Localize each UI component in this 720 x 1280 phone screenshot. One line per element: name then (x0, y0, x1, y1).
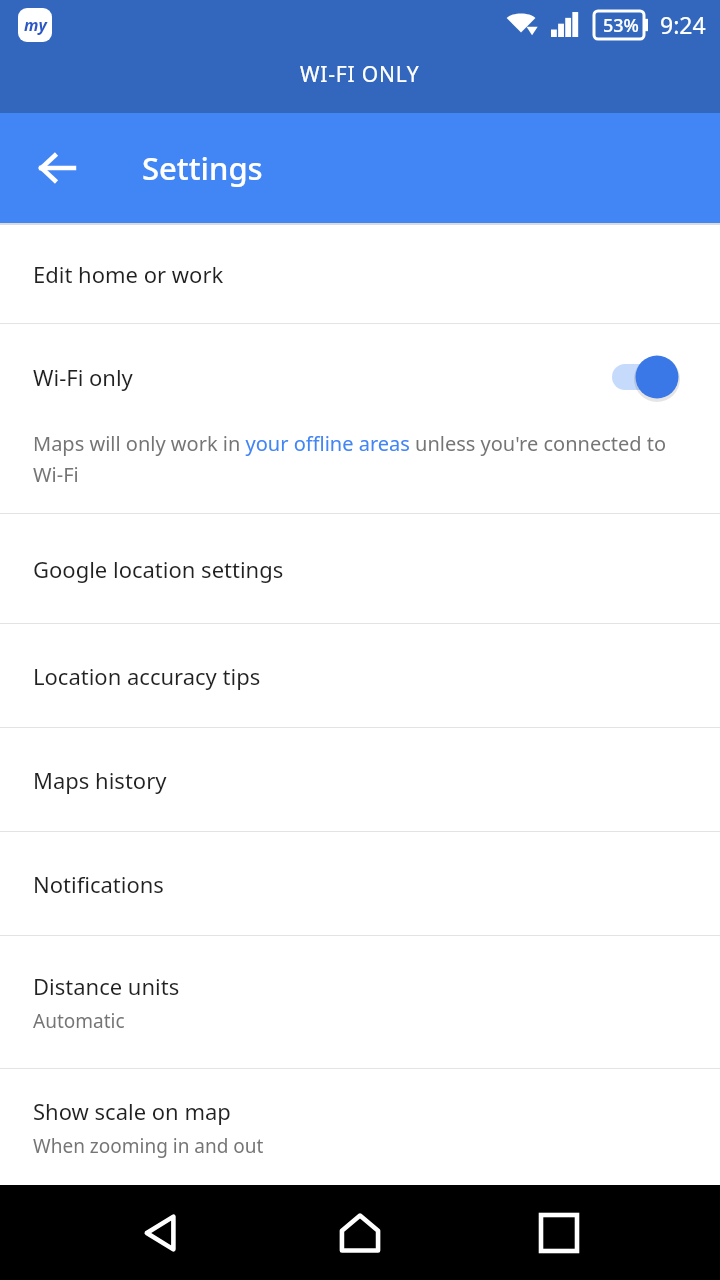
button[interactable]: Show scale on map (0, 1069, 720, 1185)
button[interactable]: Home (323, 1196, 397, 1270)
button[interactable]: Notifications (0, 832, 720, 935)
staticText: Location accuracy tips (33, 661, 261, 691)
staticText: Automatic (33, 1008, 125, 1034)
staticText: Show scale on map (33, 1096, 231, 1126)
button[interactable]: Maps history (0, 728, 720, 831)
button[interactable]: Back (26, 137, 88, 199)
button[interactable]: Location accuracy tips (0, 624, 720, 727)
staticText: 53% (603, 13, 639, 38)
staticText: my (24, 14, 47, 36)
staticText: When zooming in and out (33, 1133, 264, 1159)
staticText: Maps will only work in your offline area… (33, 430, 696, 487)
staticText: WI-FI ONLY (300, 60, 420, 89)
button[interactable]: Distance units (0, 936, 720, 1068)
staticText: Distance units (33, 971, 180, 1001)
button[interactable]: Edit home or work (0, 225, 720, 323)
staticText: 9:24 (660, 9, 706, 40)
staticText: Edit home or work (33, 259, 224, 289)
button[interactable]: Back (125, 1196, 199, 1270)
staticText: Google location settings (33, 554, 284, 584)
staticText: Settings (142, 147, 263, 189)
staticText: Maps history (33, 765, 167, 795)
button[interactable]: Wi-Fi only (0, 324, 720, 513)
staticText: Notifications (33, 869, 164, 899)
button[interactable]: Recent apps (522, 1196, 596, 1270)
staticText: Wi-Fi only (33, 362, 133, 392)
button[interactable]: Google location settings (0, 514, 720, 623)
